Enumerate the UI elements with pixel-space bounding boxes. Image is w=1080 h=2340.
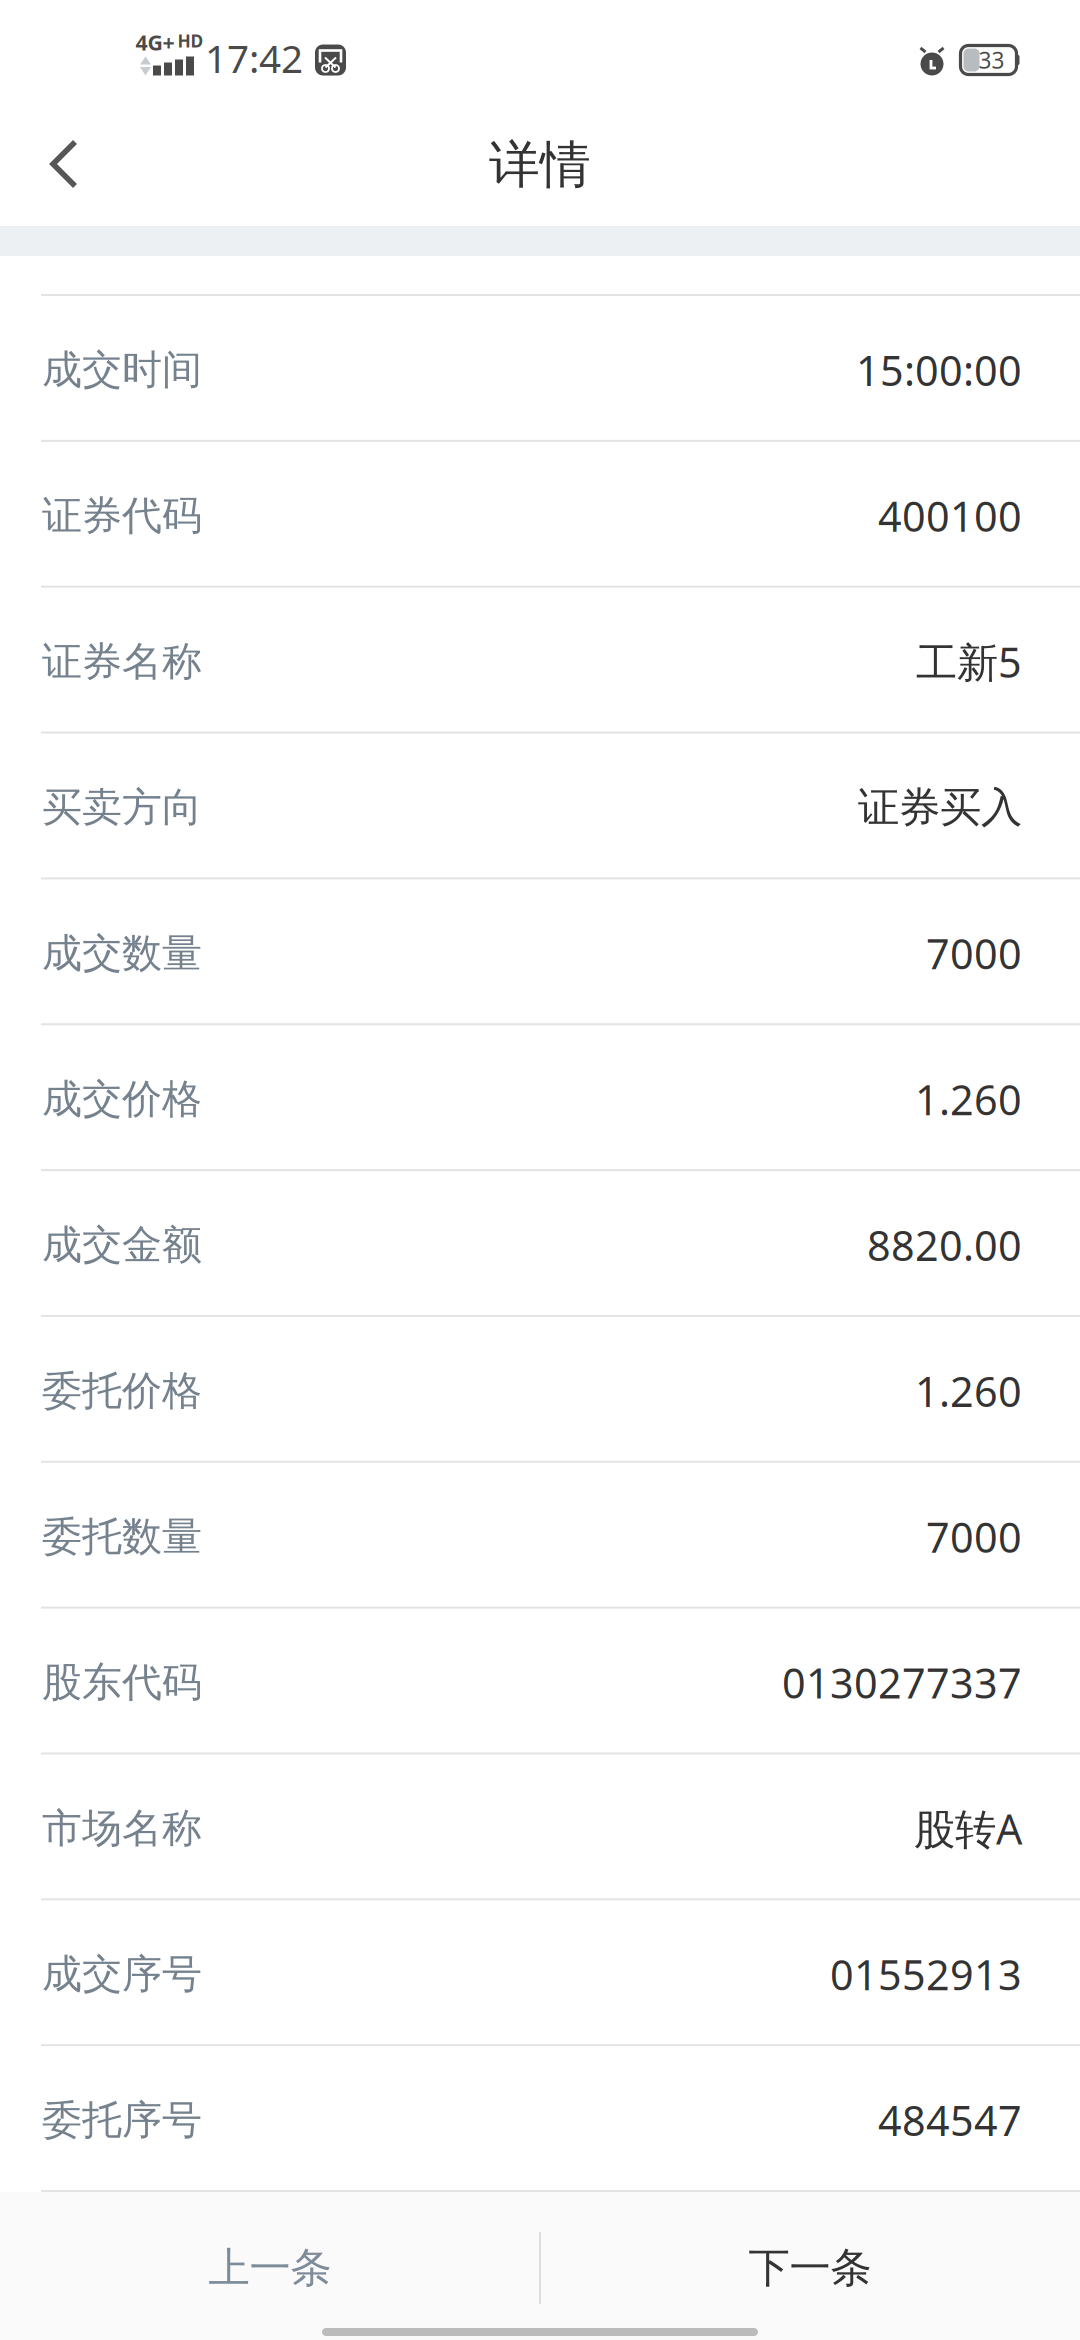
staticText: 股转A (914, 1801, 1022, 1856)
staticText: 证券代码 (42, 491, 202, 540)
staticText: 成交价格 (42, 1075, 202, 1124)
staticText: 工新5 (916, 634, 1022, 689)
button[interactable]: 下一条 (540, 2212, 1080, 2324)
staticText: 股东代码 (42, 1658, 202, 1707)
staticText: 上一条 (208, 2243, 331, 2293)
staticText: 7000 (926, 926, 1022, 981)
staticText: HD (177, 29, 203, 52)
staticText: 买卖方向 (42, 783, 202, 832)
staticText: 市场名称 (42, 1804, 202, 1853)
staticText: 成交时间 (42, 345, 202, 394)
staticText: 01552913 (830, 1947, 1022, 2002)
staticText: 1.260 (915, 1072, 1022, 1127)
staticText: 8820.00 (867, 1218, 1022, 1272)
staticText: 7000 (926, 1509, 1022, 1564)
staticText: 15:00:00 (856, 342, 1022, 397)
button[interactable]: 上一条 (0, 2212, 540, 2324)
button[interactable]: Back (0, 100, 120, 226)
staticText: 成交金额 (42, 1220, 202, 1269)
staticText: 证券名称 (42, 637, 202, 686)
staticText: 成交序号 (42, 1950, 202, 1999)
staticText: 证券买入 (858, 782, 1022, 833)
staticText: 0130277337 (782, 1655, 1022, 1710)
staticText: 400100 (878, 488, 1022, 543)
staticText: 委托价格 (42, 1366, 202, 1415)
staticText: 委托数量 (42, 1512, 202, 1561)
staticText: 成交数量 (42, 929, 202, 978)
staticText: 4G+ (135, 28, 174, 56)
staticText: 详情 (489, 134, 591, 196)
staticText: 委托序号 (42, 2095, 202, 2145)
staticText: 484547 (878, 2093, 1022, 2147)
staticText: 33 (978, 45, 1004, 75)
staticText: 下一条 (748, 2243, 871, 2293)
staticText: 17:42 (205, 32, 303, 84)
staticText: 1.260 (915, 1363, 1022, 1418)
